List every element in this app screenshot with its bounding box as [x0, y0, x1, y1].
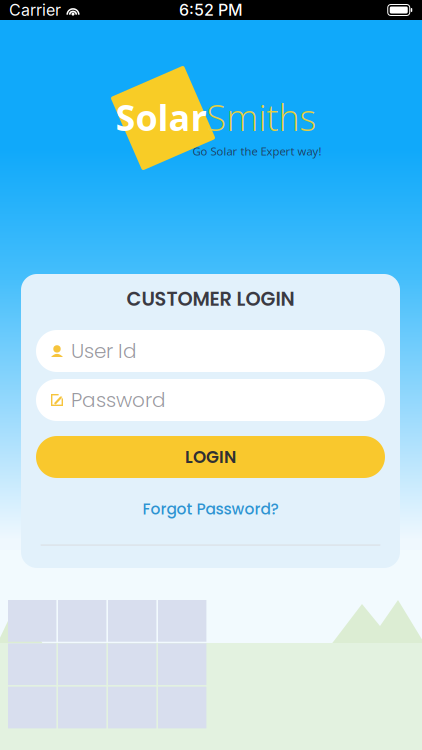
button[interactable]: Password — [36, 379, 385, 421]
button[interactable]: User Id — [36, 330, 385, 372]
button[interactable]: Forgot Password? — [136, 493, 284, 525]
staticText: CUSTOMER LOGIN — [126, 285, 294, 313]
staticText: Password — [71, 386, 166, 414]
staticText: 6:52 PM — [179, 0, 243, 20]
staticText: User Id — [71, 337, 137, 365]
button[interactable]: LOGIN — [36, 436, 385, 478]
staticText: Go Solar the Expert way! — [192, 143, 321, 159]
staticText: Carrier — [9, 0, 61, 20]
staticText: Smiths — [206, 92, 316, 141]
staticText: Forgot Password? — [142, 498, 278, 520]
staticText: Solar — [115, 92, 206, 141]
staticText: LOGIN — [185, 445, 236, 469]
